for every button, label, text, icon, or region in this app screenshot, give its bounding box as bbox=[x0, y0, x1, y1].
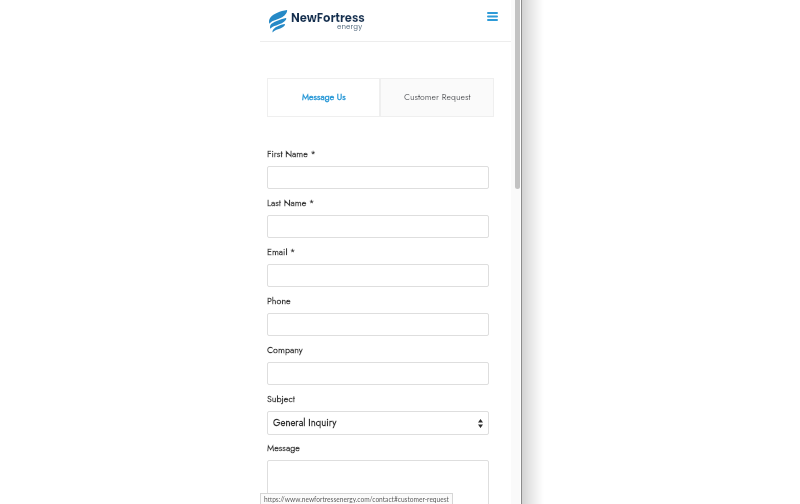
button[interactable]: Customer Request bbox=[380, 78, 494, 117]
staticText: https://www.newfortressenergy.com/contac… bbox=[264, 495, 449, 503]
button[interactable]: Open navigation menu bbox=[482, 6, 502, 26]
button[interactable] bbox=[267, 460, 489, 504]
button[interactable] bbox=[267, 215, 489, 238]
staticText: Company bbox=[267, 343, 303, 356]
staticText: General Inquiry bbox=[273, 416, 337, 430]
staticText: First Name * bbox=[267, 147, 316, 160]
button[interactable] bbox=[267, 362, 489, 385]
staticText: Customer Request bbox=[404, 91, 471, 104]
staticText: Phone bbox=[267, 294, 291, 307]
staticText: energy bbox=[337, 22, 363, 32]
button[interactable] bbox=[267, 264, 489, 287]
staticText: Last Name * bbox=[267, 196, 315, 209]
staticText: Subject bbox=[267, 392, 295, 405]
staticText: Message Us bbox=[302, 91, 346, 104]
button[interactable] bbox=[267, 166, 489, 189]
button[interactable]: New Fortress Energy home bbox=[269, 4, 287, 38]
staticText: Email * bbox=[267, 245, 296, 258]
button[interactable] bbox=[267, 313, 489, 336]
button[interactable]: Message Us bbox=[267, 78, 380, 117]
staticText: NewFortress bbox=[291, 10, 365, 26]
button[interactable]: General Inquiry bbox=[267, 411, 489, 435]
staticText: Message bbox=[267, 441, 300, 454]
